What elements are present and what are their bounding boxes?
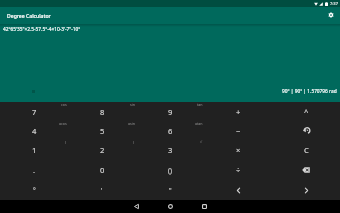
button[interactable]: C: [272, 140, 340, 160]
staticText: 7: [32, 107, 37, 117]
button[interactable]: cos: [0, 102, 68, 121]
button[interactable]: °: [0, 180, 68, 200]
button[interactable]: Recents: [187, 200, 221, 213]
staticText: tan: [197, 102, 203, 107]
staticText: ): [133, 140, 135, 145]
staticText: 7:37: [330, 1, 338, 6]
staticText: 5: [100, 126, 105, 136]
staticText: acos: [59, 121, 67, 126]
staticText: √: [200, 140, 203, 144]
staticText: +: [236, 107, 241, 117]
staticText: °: [33, 186, 36, 195]
button[interactable]: ': [68, 180, 136, 200]
button[interactable]: acos: [0, 121, 68, 140]
button[interactable]: √: [136, 140, 204, 160]
staticText: 8: [100, 107, 105, 117]
staticText: 9: [168, 107, 173, 117]
button[interactable]: +: [204, 102, 272, 121]
staticText: ": [169, 186, 172, 195]
button[interactable]: −: [204, 121, 272, 140]
staticText: ×: [236, 145, 241, 155]
staticText: atan: [195, 121, 203, 126]
staticText: sin: [130, 102, 135, 107]
staticText: 90° | 90° | 1.570796 rad: [282, 88, 337, 95]
staticText: 6: [168, 126, 173, 136]
staticText: asin: [128, 121, 135, 126]
staticText: Degree Calculator: [7, 13, 51, 20]
button[interactable]: ): [68, 140, 136, 160]
staticText: 0: [100, 165, 105, 175]
button[interactable]: [272, 180, 340, 200]
staticText: 3: [168, 145, 173, 155]
staticText: .: [33, 165, 36, 175]
staticText: cos: [61, 102, 67, 107]
button[interactable]: Back: [119, 200, 153, 213]
button[interactable]: ^: [272, 102, 340, 121]
staticText: (: [65, 140, 67, 145]
staticText: (): [168, 166, 172, 175]
button[interactable]: (: [0, 140, 68, 160]
button[interactable]: [204, 180, 272, 200]
button[interactable]: (): [136, 160, 204, 180]
staticText: 4: [32, 126, 37, 136]
staticText: ': [101, 186, 103, 195]
staticText: 42°65'35"×2.5-57.5°-4×10-3'-7"-10°: [3, 26, 81, 33]
staticText: −: [236, 126, 241, 136]
button[interactable]: Home: [153, 200, 187, 213]
staticText: C: [304, 145, 309, 155]
button[interactable]: tan: [136, 102, 204, 121]
button[interactable]: .: [0, 160, 68, 180]
button[interactable]: ": [136, 180, 204, 200]
button[interactable]: asin: [68, 121, 136, 140]
button[interactable]: sin: [68, 102, 136, 121]
staticText: ÷: [236, 165, 241, 175]
button[interactable]: ÷: [204, 160, 272, 180]
staticText: 1: [32, 145, 37, 155]
staticText: 2: [100, 145, 105, 155]
button[interactable]: 0: [68, 160, 136, 180]
button[interactable]: Settings: [325, 9, 336, 20]
staticText: ^: [304, 107, 309, 117]
button[interactable]: ×: [204, 140, 272, 160]
button[interactable]: [272, 160, 340, 180]
button[interactable]: [272, 121, 340, 140]
button[interactable]: atan: [136, 121, 204, 140]
